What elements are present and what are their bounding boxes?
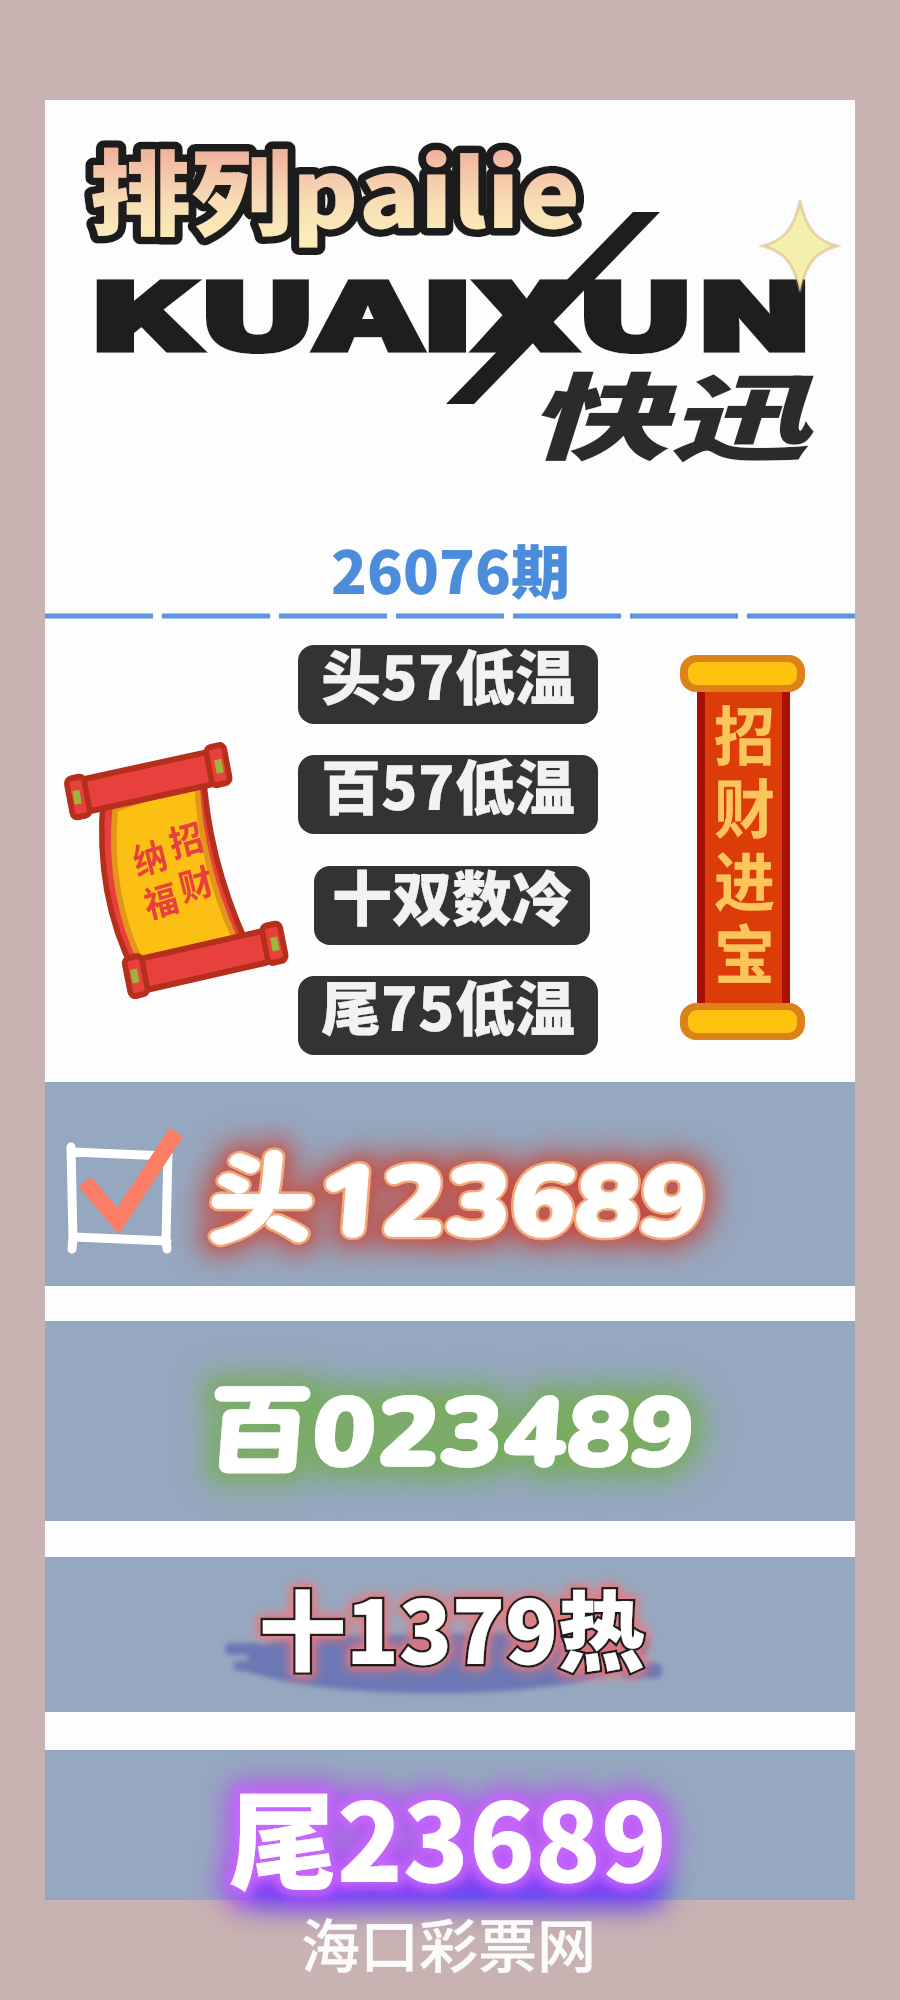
button[interactable] [45,1082,855,1286]
button[interactable] [45,1321,855,1521]
button[interactable] [45,1557,855,1712]
button[interactable] [314,866,590,945]
button[interactable] [333,540,567,602]
button[interactable] [45,1750,855,1900]
button[interactable]: Selected [66,1142,178,1254]
button[interactable]: 招财进宝 banner [676,650,810,1045]
button[interactable] [298,755,598,834]
button[interactable]: 纳招福财 scroll [60,745,300,1010]
button[interactable] [298,976,598,1055]
button[interactable] [298,645,598,724]
button[interactable]: 排列快讯 KUAIXUN logo [45,100,855,460]
